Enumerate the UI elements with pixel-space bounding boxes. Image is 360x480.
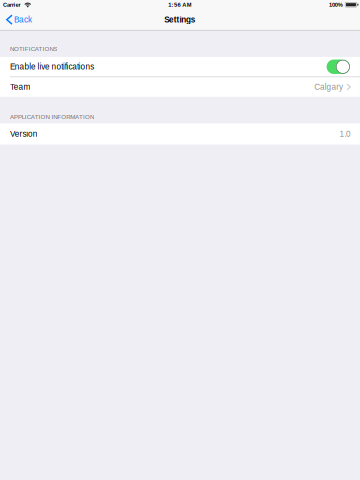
staticText: APPLICATION INFORMATION	[10, 114, 94, 120]
button[interactable]: Enable live notifications	[0, 57, 360, 77]
staticText: Carrier	[3, 1, 20, 8]
staticText: Back	[14, 15, 32, 24]
staticText: NOTIFICATIONS	[10, 45, 57, 52]
staticText: Team	[10, 82, 30, 91]
button[interactable]: Version	[0, 123, 360, 144]
button[interactable]: Team	[0, 77, 360, 97]
staticText: 1.0	[339, 129, 351, 138]
staticText: 100%	[329, 1, 343, 8]
button[interactable]: Back	[0, 9, 38, 30]
staticText: Version	[10, 129, 38, 138]
staticText: Enable live notifications	[10, 62, 94, 71]
staticText: Settings	[164, 15, 196, 24]
staticText: Calgary	[314, 82, 343, 91]
staticText: 1:56 AM	[168, 1, 192, 8]
